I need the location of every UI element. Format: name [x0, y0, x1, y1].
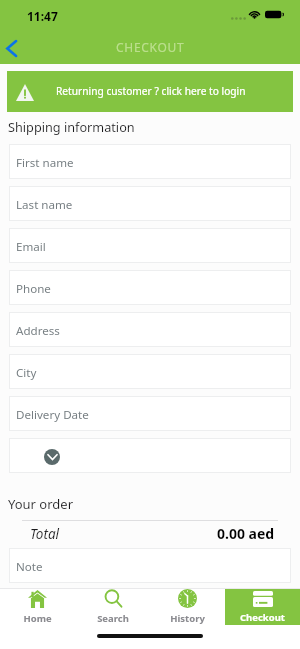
button[interactable]: Returning customer ? click here to login [7, 71, 293, 112]
button[interactable]: History [150, 589, 225, 625]
button[interactable]: Checkout [225, 589, 300, 625]
staticText: First name [16, 155, 74, 171]
staticText: Note [16, 559, 43, 575]
staticText: Address [16, 323, 60, 339]
staticText: Last name [16, 197, 73, 213]
button[interactable]: Last name [9, 186, 291, 221]
button[interactable]: Delivery Date [9, 396, 291, 431]
staticText: Total [30, 525, 60, 543]
button[interactable]: Back [0, 28, 24, 64]
staticText: Your order [8, 495, 74, 513]
staticText: CHECKOUT [116, 39, 185, 55]
staticText: City [16, 365, 37, 381]
staticText: Search [97, 612, 129, 625]
button[interactable]: City [9, 354, 291, 389]
staticText: Checkout [240, 611, 285, 624]
staticText: Returning customer ? click here to login [56, 84, 246, 98]
button[interactable]: Address [9, 312, 291, 347]
staticText: 11:47 [27, 8, 58, 24]
button[interactable]: Expand [9, 438, 291, 473]
staticText: Shipping information [8, 118, 135, 135]
button[interactable]: Search [75, 589, 150, 625]
staticText: Home [23, 612, 52, 625]
button[interactable]: Phone [9, 270, 291, 305]
staticText: History [170, 612, 205, 625]
staticText: 0.00 aed [217, 524, 275, 543]
button[interactable]: First name [9, 144, 291, 179]
button[interactable]: Note [9, 548, 291, 583]
staticText: Delivery Date [16, 407, 89, 423]
staticText: Phone [16, 281, 51, 297]
button[interactable]: Home [0, 589, 75, 625]
button[interactable]: Email [9, 228, 291, 263]
staticText: Email [16, 239, 46, 255]
